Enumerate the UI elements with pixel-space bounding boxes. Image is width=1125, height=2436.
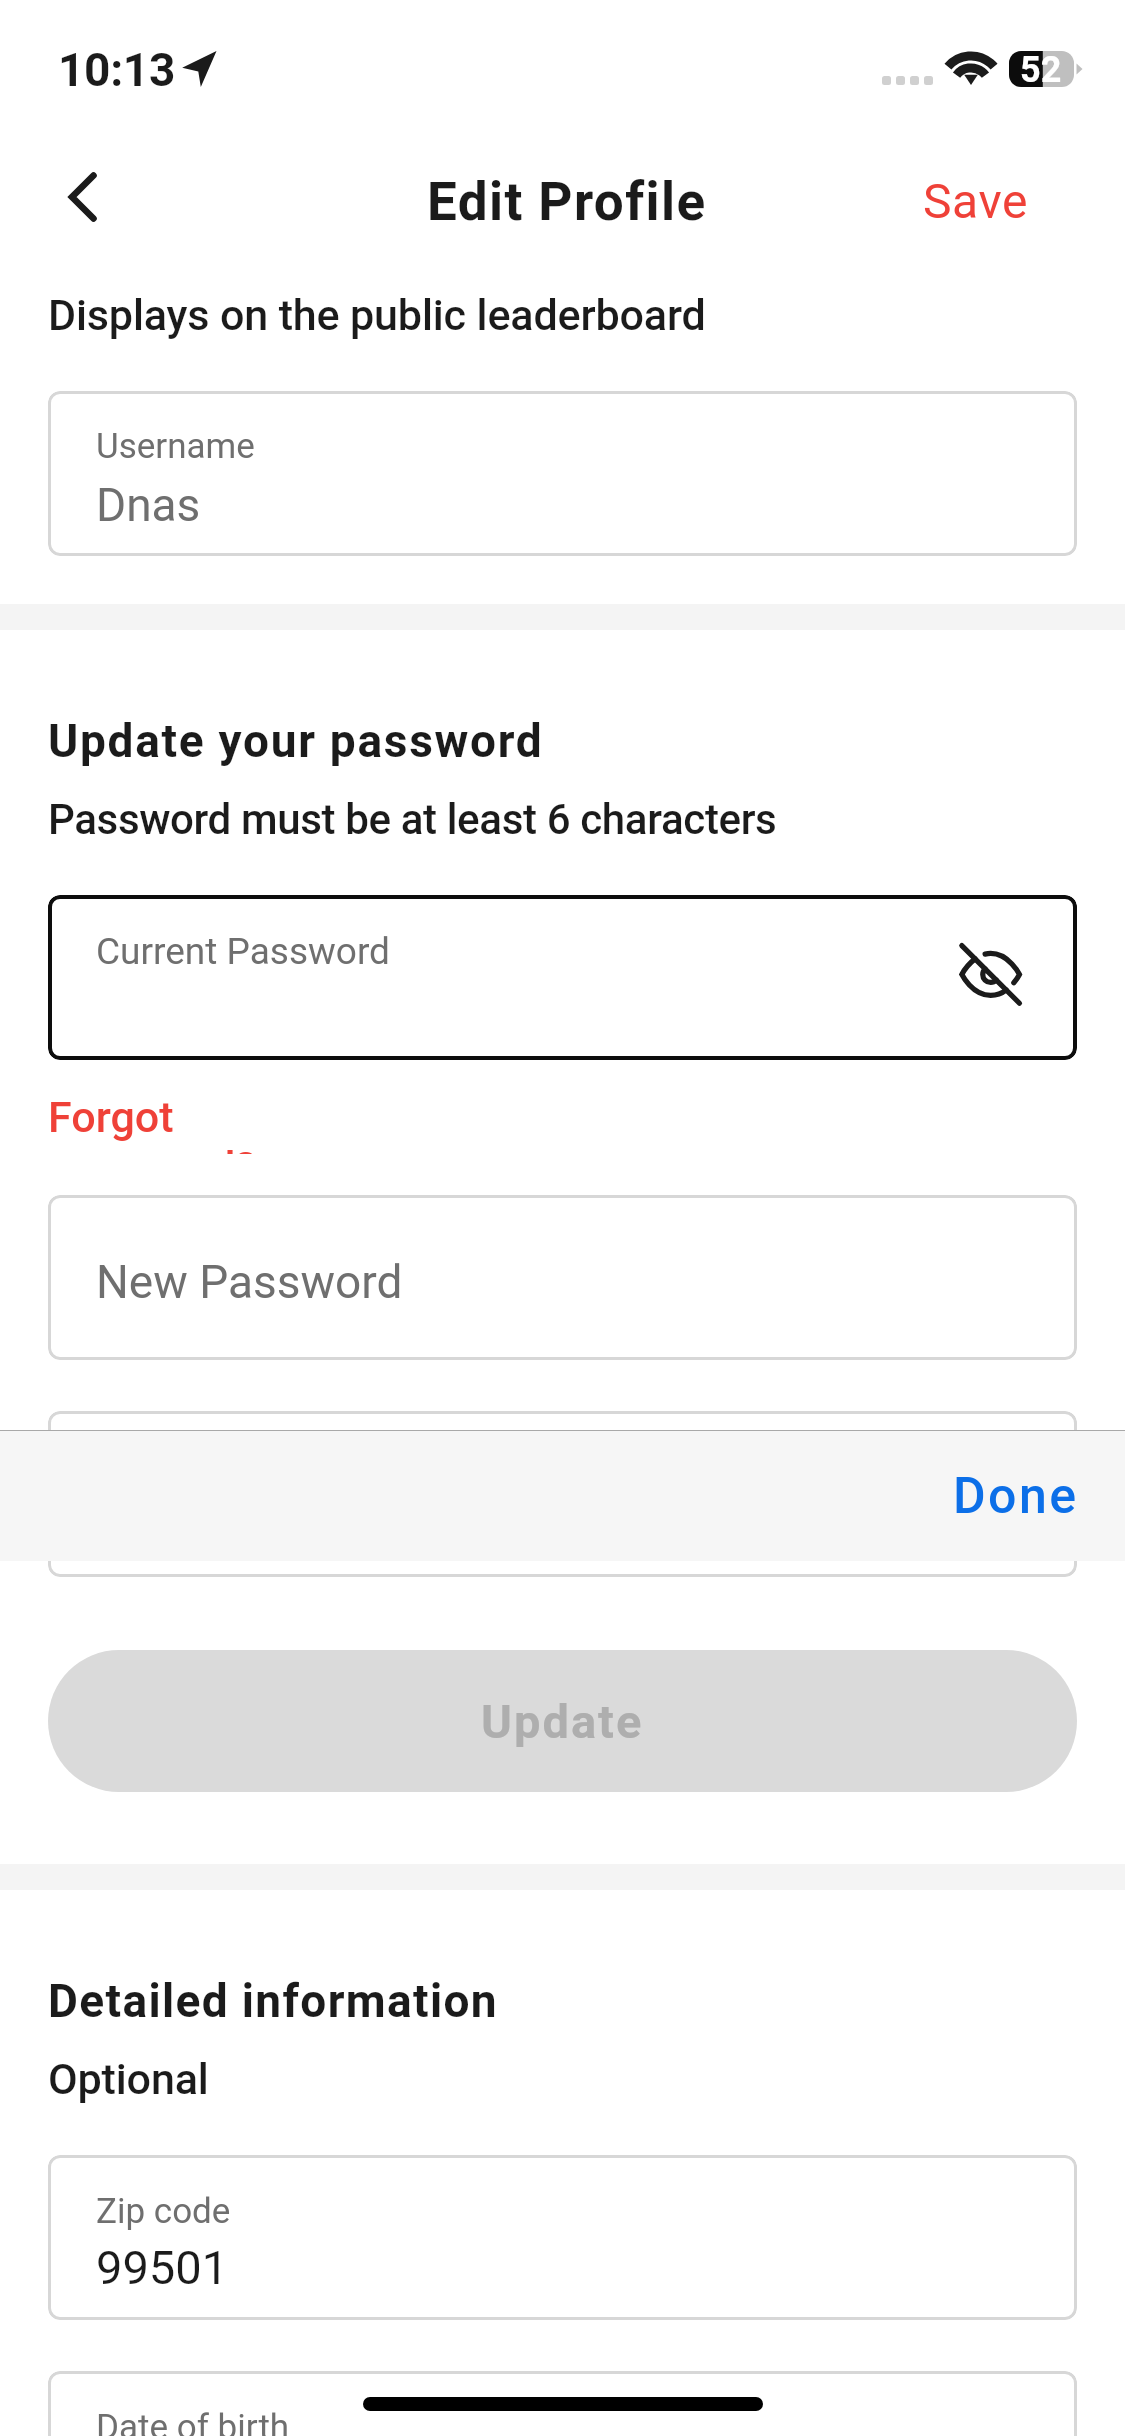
button[interactable]: Zip code <box>48 2155 1077 2320</box>
button[interactable]: Username <box>48 391 1077 556</box>
staticText: Zip code <box>96 2191 231 2232</box>
staticText: 52 <box>1020 49 1062 91</box>
staticText: Optional <box>48 2054 209 2104</box>
staticText: Username <box>96 426 255 467</box>
staticText: New Password <box>96 1255 403 1309</box>
button[interactable]: Date of birth <box>48 2371 1077 2436</box>
staticText: Update your password <box>48 714 544 768</box>
button[interactable]: Done <box>945 1441 1125 1551</box>
button[interactable]: Back <box>28 142 138 252</box>
staticText: Password must be at least 6 characters <box>48 795 777 844</box>
staticText: Forgot password? <box>48 1092 390 1154</box>
button[interactable]: Update <box>48 1650 1077 1792</box>
staticText: Displays on the public leaderboard <box>48 290 706 340</box>
staticText: Edit Profile <box>427 171 707 233</box>
staticText: 99501 <box>96 2240 229 2295</box>
staticText: Update <box>481 1694 644 1749</box>
staticText: Save <box>923 173 1029 229</box>
staticText: Detailed information <box>48 1974 498 2028</box>
button[interactable]: Save <box>898 157 1054 245</box>
staticText: Current Password <box>96 930 390 973</box>
button[interactable]: Forgot password? <box>48 1085 390 1147</box>
button[interactable]: Current Password <box>48 895 1077 1060</box>
staticText: Date of birth <box>96 2407 290 2436</box>
staticText: 10:13 <box>58 43 176 97</box>
button[interactable]: New Password <box>48 1195 1077 1360</box>
button[interactable]: Show password <box>943 927 1043 1027</box>
staticText: Dnas <box>96 478 201 532</box>
button[interactable] <box>48 1411 1077 1577</box>
staticText: Done <box>953 1467 1079 1526</box>
